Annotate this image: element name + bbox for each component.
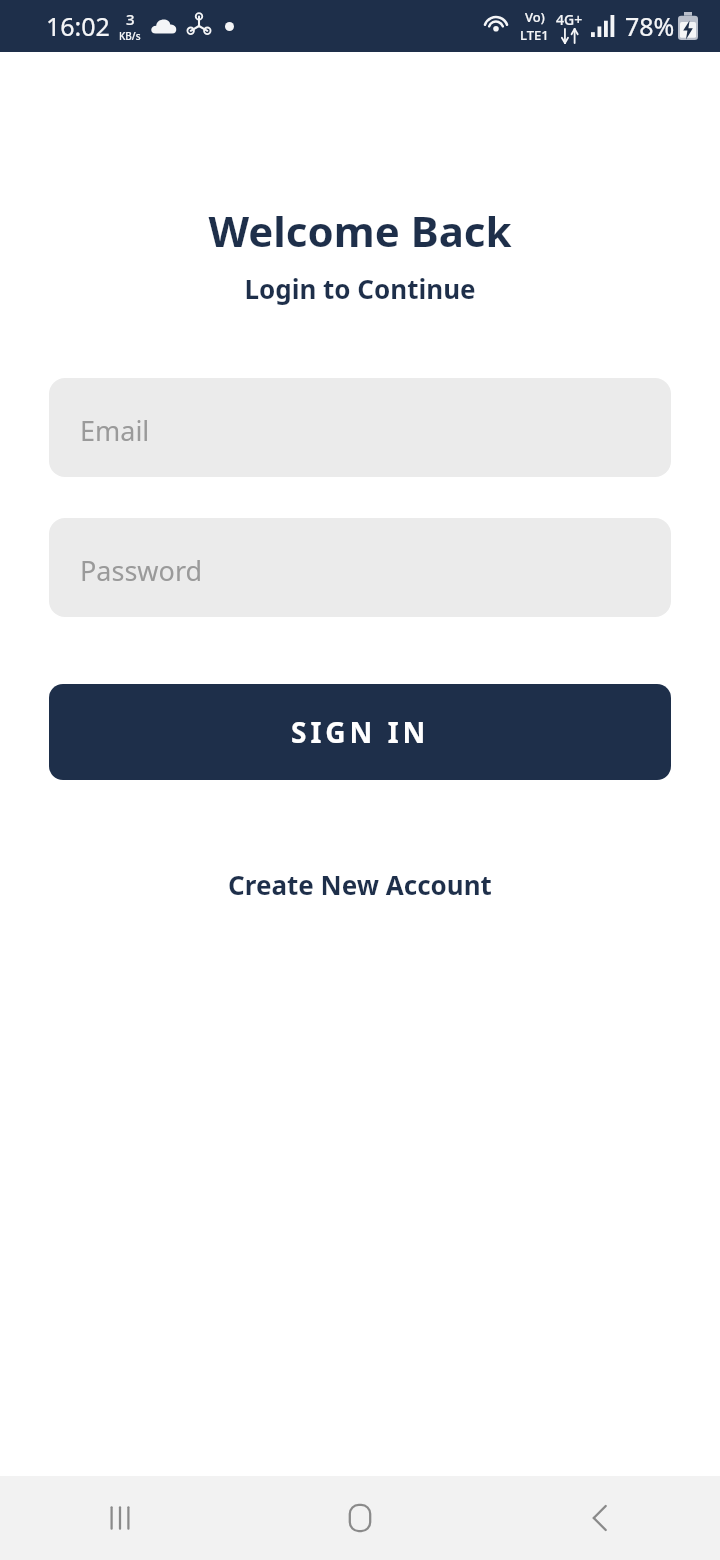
staticText: Welcome Back — [0, 202, 720, 259]
staticText: KB/s — [119, 29, 141, 43]
staticText: Create New Account — [228, 867, 492, 902]
staticText: 16:02 — [46, 9, 110, 43]
button[interactable]: Recent apps — [0, 1476, 240, 1560]
button[interactable]: Email — [49, 378, 671, 477]
staticText: Email — [80, 412, 150, 449]
staticText: Login to Continue — [0, 271, 720, 306]
staticText: LTE1 — [520, 26, 549, 44]
staticText: 78% — [625, 9, 675, 43]
staticText: Password — [80, 552, 203, 589]
button[interactable]: Create New Account — [0, 858, 720, 910]
button[interactable]: Back — [480, 1476, 720, 1560]
staticText: 4G+ — [556, 10, 583, 29]
staticText: SIGN IN — [291, 713, 430, 751]
staticText: Vo) — [525, 8, 545, 26]
button[interactable]: SIGN IN — [49, 684, 671, 780]
button[interactable]: Password — [49, 518, 671, 617]
button[interactable]: Home — [240, 1476, 480, 1560]
staticText: 3 — [126, 9, 135, 29]
